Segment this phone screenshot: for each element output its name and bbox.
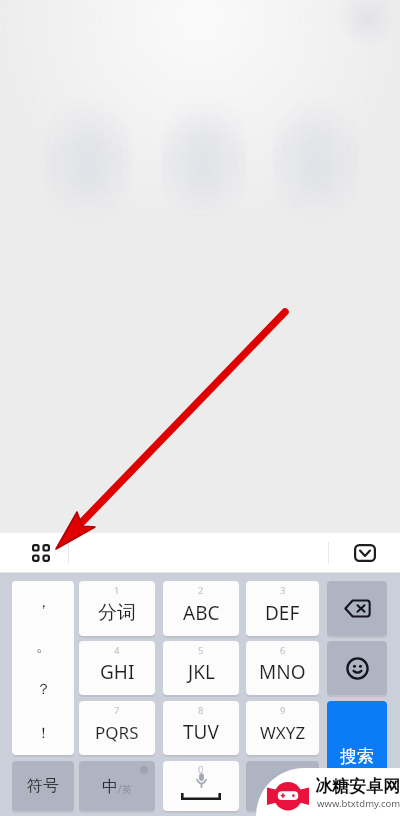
button[interactable]: 2 ABC bbox=[163, 581, 239, 636]
staticText: 8 bbox=[198, 704, 204, 717]
staticText: 9 bbox=[280, 704, 286, 717]
staticText: 分词 bbox=[98, 601, 136, 625]
button[interactable]: 6 MNO bbox=[246, 641, 319, 695]
staticText: ABC bbox=[183, 600, 220, 626]
staticText: ？ bbox=[36, 680, 51, 699]
staticText: www.btxtdmy.com bbox=[317, 797, 400, 810]
staticText: TUV bbox=[183, 719, 219, 745]
staticText: MNO bbox=[259, 659, 306, 685]
button[interactable]: 1 分词 bbox=[79, 581, 155, 636]
button[interactable]: 7 PQRS bbox=[79, 701, 155, 755]
staticText: /英 bbox=[118, 782, 132, 796]
staticText: 6 bbox=[280, 644, 286, 657]
button[interactable]: Hide keyboard bbox=[348, 533, 382, 573]
staticText: 符号 bbox=[27, 776, 59, 796]
staticText: ， bbox=[36, 593, 51, 612]
button[interactable]: 5 JKL bbox=[163, 641, 239, 695]
button[interactable]: 更多 bbox=[246, 761, 319, 811]
button[interactable]: 符号 bbox=[12, 761, 74, 811]
staticText: 。 bbox=[36, 637, 51, 656]
staticText: 0 bbox=[198, 763, 204, 776]
staticText: 4 bbox=[114, 644, 120, 657]
button[interactable]: 4 GHI bbox=[79, 641, 155, 695]
staticText: JKL bbox=[188, 659, 215, 685]
staticText: 3 bbox=[280, 584, 286, 597]
staticText: GHI bbox=[100, 659, 135, 685]
staticText: 1 bbox=[114, 584, 120, 597]
staticText: 中 bbox=[102, 777, 118, 797]
button[interactable]: Keyboard panel menu bbox=[22, 533, 60, 573]
staticText: WXYZ bbox=[260, 721, 306, 744]
staticText: 2 bbox=[198, 584, 204, 597]
staticText: DEF bbox=[265, 600, 300, 626]
button[interactable]: 8 TUV bbox=[163, 701, 239, 755]
staticText: 冰糖安卓网 bbox=[315, 776, 400, 797]
button[interactable]: Punctuation bbox=[12, 581, 74, 755]
button[interactable]: 9 WXYZ bbox=[246, 701, 319, 755]
staticText: 7 bbox=[114, 704, 120, 717]
staticText: 5 bbox=[198, 644, 204, 657]
button[interactable]: Backspace bbox=[327, 581, 387, 636]
staticText: ！ bbox=[36, 724, 51, 743]
button[interactable]: 搜索 bbox=[327, 701, 387, 811]
staticText: 搜索 bbox=[340, 746, 374, 767]
button[interactable]: Emoji bbox=[327, 641, 387, 695]
staticText: PQRS bbox=[95, 721, 139, 744]
button[interactable]: 空格 bbox=[163, 761, 239, 811]
button[interactable]: 中英切换 bbox=[79, 761, 155, 811]
button[interactable]: 3 DEF bbox=[246, 581, 319, 636]
